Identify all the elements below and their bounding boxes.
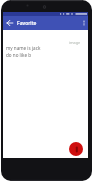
button[interactable] <box>69 142 83 156</box>
staticText: Favorite <box>17 20 37 27</box>
staticText: my name is jack <box>6 45 41 51</box>
button[interactable] <box>81 20 87 26</box>
button[interactable] <box>5 18 15 28</box>
button[interactable]: my name is jack <box>6 45 88 58</box>
staticText: image <box>69 40 81 45</box>
staticText: do no like b <box>6 52 32 58</box>
